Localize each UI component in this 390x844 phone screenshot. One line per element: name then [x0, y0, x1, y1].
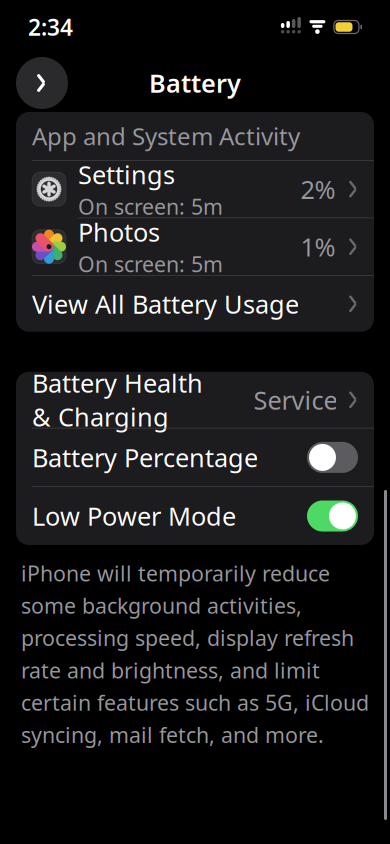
staticText: Settings — [78, 158, 175, 191]
staticText: Battery Percentage — [32, 441, 258, 474]
staticText: On screen: 5m — [78, 250, 223, 278]
staticText: Low Power Mode — [32, 499, 236, 533]
staticText: Battery — [149, 66, 241, 100]
staticText: iPhone will temporarily reduce some back… — [21, 559, 369, 749]
staticText: 2% — [300, 172, 335, 206]
staticText: Service — [253, 383, 337, 417]
staticText: Battery Health & Charging — [32, 366, 203, 433]
button[interactable]: Back — [14, 55, 70, 111]
button[interactable]: Battery Percentage — [16, 428, 374, 486]
button[interactable]: View All Battery Usage — [16, 276, 374, 332]
staticText: Photos — [78, 215, 160, 249]
staticText: 2:34 — [28, 12, 73, 42]
staticText: 1% — [300, 230, 335, 263]
button[interactable]: Photos — [16, 218, 374, 275]
staticText: On screen: 5m — [78, 192, 223, 221]
staticText: App and System Activity — [32, 120, 300, 152]
button[interactable]: Settings — [16, 161, 374, 218]
button[interactable]: Battery Health & Charging — [16, 372, 374, 428]
staticText: View All Battery Usage — [32, 287, 299, 321]
button[interactable]: Low Power Mode — [16, 487, 374, 545]
